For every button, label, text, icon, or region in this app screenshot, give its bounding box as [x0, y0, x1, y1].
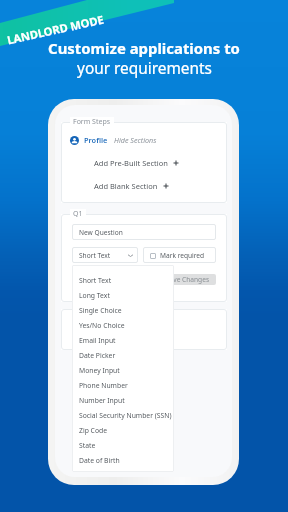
other: Add: [163, 183, 169, 189]
button[interactable]: Zip Code: [72, 423, 174, 438]
button[interactable]: Number Input: [72, 393, 174, 408]
staticText: LANDLORD MODE: [6, 11, 105, 48]
staticText: Single Choice: [79, 306, 122, 315]
button[interactable]: Short Text: [72, 273, 174, 288]
staticText: Customize applications to: [48, 38, 240, 58]
staticText: Phone Number: [79, 381, 128, 390]
staticText: Long Text: [79, 291, 110, 300]
other: Add: [173, 160, 179, 166]
staticText: New Question: [79, 228, 123, 237]
button[interactable]: Long Text: [72, 288, 174, 303]
staticText: State: [79, 441, 96, 450]
button[interactable]: Profile: [70, 135, 157, 145]
staticText: Yes/No Choice: [79, 321, 125, 330]
button[interactable]: Email Input: [72, 333, 174, 348]
staticText: Date of Birth: [79, 456, 120, 465]
staticText: Profile: [84, 135, 108, 145]
staticText: Q1: [73, 209, 83, 219]
button[interactable]: Single Choice: [72, 303, 174, 318]
staticText: Number Input: [79, 396, 125, 405]
staticText: Save Changes: [166, 275, 210, 284]
button[interactable]: Short Text: [72, 247, 138, 263]
button[interactable]: Date of Birth: [72, 453, 174, 468]
button[interactable]: State: [72, 438, 174, 453]
button[interactable]: Social Security Number (SSN): [72, 408, 174, 423]
button[interactable]: Add Blank Section: [94, 181, 169, 191]
button[interactable]: Money Input: [72, 363, 174, 378]
other: Profile: [70, 136, 79, 145]
staticText: Zip Code: [79, 426, 108, 435]
staticText: Date Picker: [79, 351, 116, 360]
staticText: Form Steps: [73, 117, 111, 127]
staticText: Social Security Number (SSN): [79, 411, 172, 420]
button[interactable]: Add Pre-Built Section: [94, 158, 179, 168]
staticText: Email Input: [79, 336, 116, 345]
staticText: Hide Sections: [114, 135, 157, 145]
button[interactable]: Phone Number: [72, 378, 174, 393]
button[interactable]: Save Changes: [160, 274, 216, 285]
staticText: Short Text: [79, 276, 112, 285]
button[interactable]: Mark required: [143, 247, 216, 263]
staticText: your requirements: [77, 58, 212, 79]
staticText: Money Input: [79, 366, 120, 375]
staticText: Add Blank Section: [94, 181, 158, 191]
staticText: Add Pre-Built Section: [94, 158, 168, 168]
button[interactable]: Date Picker: [72, 348, 174, 363]
staticText: Mark required: [160, 251, 205, 260]
button[interactable]: Add Section: [123, 325, 165, 335]
staticText: Add Section: [123, 325, 165, 335]
button[interactable]: Yes/No Choice: [72, 318, 174, 333]
staticText: Short Text: [79, 251, 111, 260]
